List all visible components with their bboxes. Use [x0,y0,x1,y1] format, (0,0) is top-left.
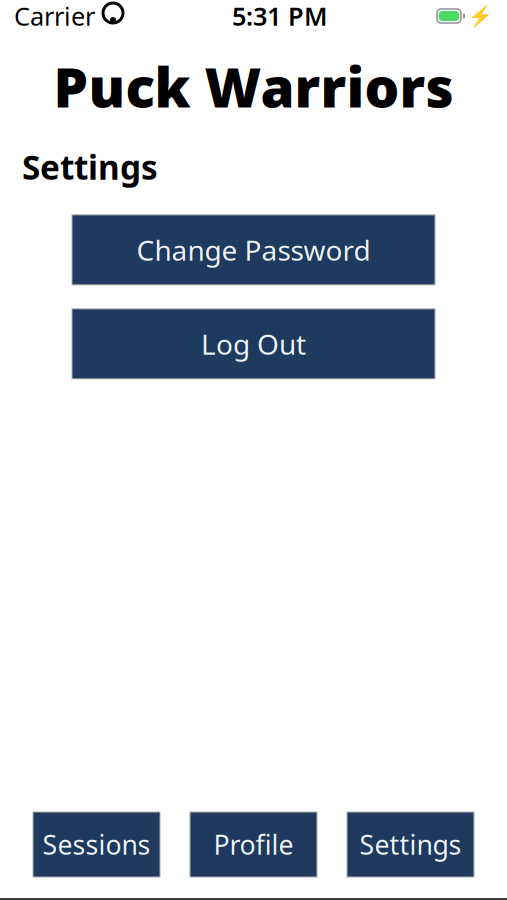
staticText: Settings [22,145,158,189]
button[interactable]: Profile [190,812,317,877]
staticText: Profile [213,827,293,862]
staticText: Puck Warriors [53,50,453,123]
staticText: 5:31 PM [232,0,328,33]
staticText: Settings [359,827,461,862]
button[interactable]: Log Out [72,309,435,379]
staticText: Carrier [14,0,95,33]
staticText: Sessions [42,827,150,862]
button[interactable]: Sessions [33,812,160,877]
button[interactable]: Change Password [72,215,435,285]
button[interactable]: Settings [347,812,474,877]
staticText: ⚡ [468,5,493,27]
staticText: Change Password [136,231,370,268]
staticText: Log Out [201,325,306,362]
